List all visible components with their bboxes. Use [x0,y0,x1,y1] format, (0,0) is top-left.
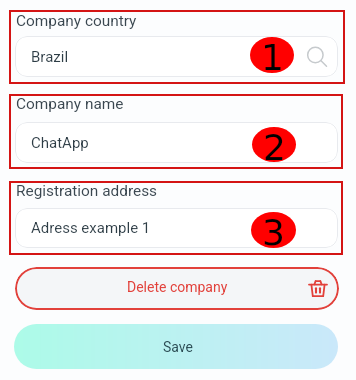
button[interactable]: Adress example 1 [15,208,338,248]
staticText: 3 [262,212,285,248]
button[interactable]: Delete company [15,267,339,310]
button[interactable]: ChatApp [15,122,338,163]
staticText: 2 [263,127,286,162]
button[interactable]: Save [14,324,338,369]
staticText: Delete company [127,279,228,295]
staticText: ChatApp [31,134,89,152]
other: Search [307,46,329,68]
staticText: 1 [261,37,284,73]
staticText: Company country [16,12,137,30]
staticText: Adress example 1 [31,219,151,237]
button[interactable]: Brazil [15,36,338,77]
staticText: Company name [16,95,124,113]
staticText: Save [163,339,193,355]
staticText: Registration address [16,182,158,200]
staticText: Brazil [31,48,69,66]
